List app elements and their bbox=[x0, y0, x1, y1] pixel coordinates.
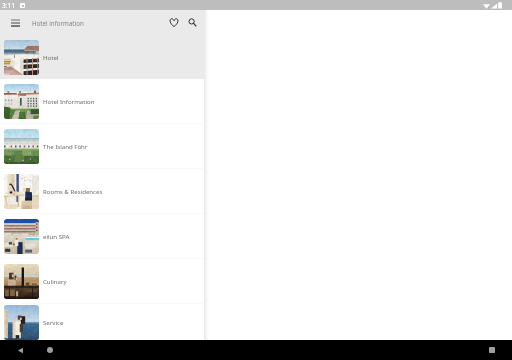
button[interactable]: Back bbox=[12, 342, 28, 358]
button[interactable]: Home bbox=[42, 342, 58, 358]
staticText: Service bbox=[43, 318, 64, 326]
button[interactable]: Hotel bbox=[0, 35, 204, 79]
staticText: eilun SPA bbox=[43, 232, 70, 240]
button[interactable]: The Island Föhr bbox=[0, 124, 204, 168]
staticText: Rooms & Residences bbox=[43, 187, 103, 195]
button[interactable]: Search bbox=[183, 13, 202, 32]
button[interactable]: Favorites bbox=[164, 13, 183, 32]
staticText: Hotel information bbox=[32, 19, 84, 27]
button[interactable]: Recent apps bbox=[484, 342, 500, 358]
button[interactable]: Open navigation menu bbox=[6, 14, 24, 32]
button[interactable]: Rooms & Residences bbox=[0, 169, 204, 213]
staticText: The Island Föhr bbox=[43, 142, 88, 150]
button[interactable]: Service bbox=[0, 304, 204, 340]
staticText: Culinary bbox=[43, 277, 67, 285]
staticText: Hotel bbox=[43, 53, 59, 61]
staticText: Hotel Information bbox=[43, 97, 95, 105]
staticText: 3:11 bbox=[2, 1, 15, 10]
button[interactable]: Hotel Information bbox=[0, 79, 204, 123]
button[interactable]: Culinary bbox=[0, 259, 204, 303]
button[interactable]: eilun SPA bbox=[0, 214, 204, 258]
